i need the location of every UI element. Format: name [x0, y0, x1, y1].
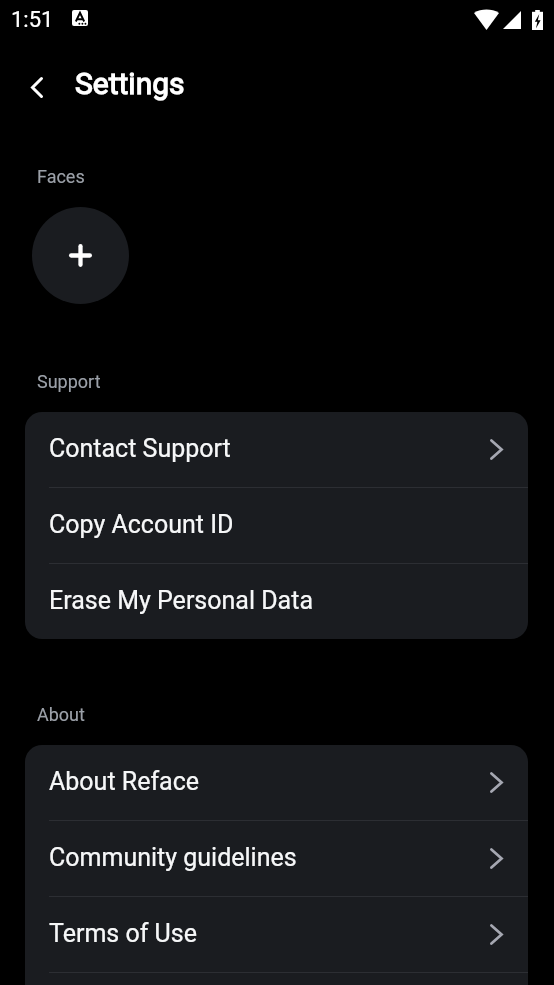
staticText: Faces [37, 166, 85, 187]
button[interactable]: Community guidelines [25, 821, 528, 896]
staticText: Erase My Personal Data [49, 586, 313, 615]
staticText: Settings [75, 66, 185, 101]
staticText: About Reface [49, 767, 200, 796]
button[interactable]: Copy Account ID [25, 488, 528, 563]
staticText: Community guidelines [49, 843, 297, 872]
staticText: About [37, 704, 85, 725]
button[interactable]: Add face [32, 207, 129, 304]
staticText: Copy Account ID [49, 510, 234, 539]
button[interactable]: Terms of Use [25, 897, 528, 972]
button[interactable]: Back [18, 68, 56, 106]
staticText: 1:51 [11, 7, 54, 33]
button[interactable]: About Reface [25, 745, 528, 820]
button[interactable]: Erase My Personal Data [25, 564, 528, 639]
staticText: Terms of Use [49, 919, 197, 948]
button[interactable]: Contact Support [25, 412, 528, 487]
staticText: Contact Support [49, 434, 231, 463]
staticText: Support [37, 371, 101, 392]
